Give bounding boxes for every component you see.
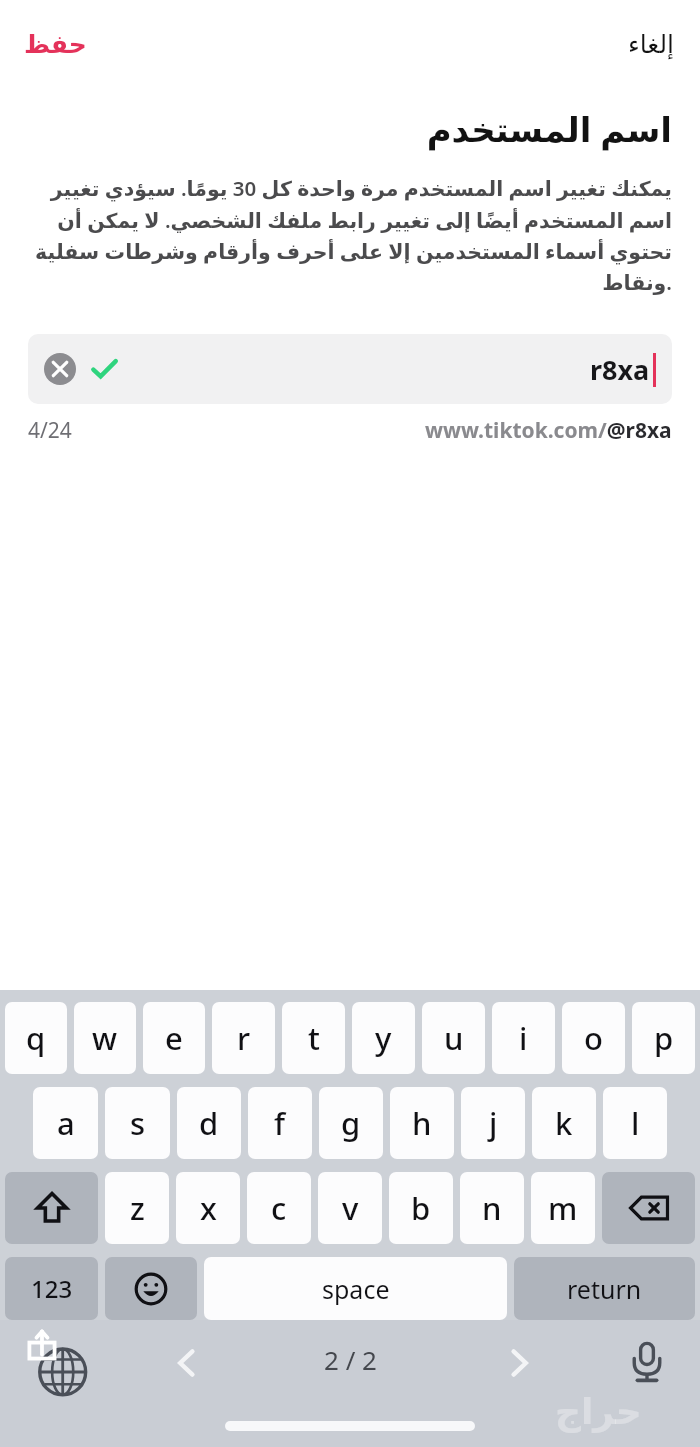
staticText: z [130,1187,145,1229]
staticText: اسم المستخدم [28,106,672,152]
staticText: w [92,1017,118,1059]
staticText: o [584,1017,603,1059]
button[interactable]: d [177,1087,241,1159]
staticText: يمكنك تغيير اسم المستخدم مرة واحدة كل 30… [28,174,672,296]
button[interactable]: l [603,1087,667,1159]
button[interactable]: حفظ [10,22,101,67]
staticText: r [237,1017,251,1059]
button[interactable]: b [389,1172,453,1244]
staticText: f [274,1102,286,1144]
button[interactable]: 123 [5,1257,98,1320]
button[interactable]: n [460,1172,524,1244]
button[interactable]: Next [494,1338,544,1388]
staticText: 2 / 2 [324,1342,377,1377]
button[interactable]: Clear text [28,334,672,404]
staticText: حفظ [24,30,87,59]
button[interactable]: space [204,1257,507,1320]
button[interactable]: a [33,1087,98,1159]
button[interactable]: z [105,1172,169,1244]
staticText: b [411,1187,431,1229]
button[interactable]: k [532,1087,596,1159]
staticText: y [375,1017,392,1059]
other: Username available [90,355,118,383]
staticText: n [482,1187,502,1229]
button[interactable]: v [318,1172,382,1244]
staticText: www.tiktok.com/@r8xa [425,416,672,445]
staticText: t [308,1017,320,1059]
button[interactable]: c [247,1172,311,1244]
staticText: s [130,1102,146,1144]
button[interactable]: w [74,1002,136,1074]
button[interactable]: j [461,1087,525,1159]
staticText: g [341,1102,361,1144]
button[interactable]: x [176,1172,240,1244]
staticText: p [654,1017,674,1059]
button[interactable]: إلغاء [614,22,688,67]
staticText: q [26,1017,46,1059]
button[interactable]: s [105,1087,170,1159]
staticText: v [342,1187,359,1229]
button[interactable]: return [514,1257,695,1320]
staticText: u [444,1017,464,1059]
staticText: k [555,1102,573,1144]
button[interactable]: g [319,1087,383,1159]
staticText: 123 [31,1272,73,1305]
button[interactable]: h [390,1087,454,1159]
staticText: h [412,1102,432,1144]
staticText: i [519,1017,528,1059]
button[interactable]: y [352,1002,415,1074]
button[interactable]: Previous [162,1338,212,1388]
button[interactable]: Emoji [105,1257,197,1320]
button[interactable]: r [212,1002,275,1074]
staticText: a [57,1102,75,1144]
staticText: e [165,1017,183,1059]
staticText: space [322,1272,390,1306]
staticText: j [489,1102,498,1144]
staticText: m [548,1187,578,1229]
button[interactable]: q [5,1002,67,1074]
button[interactable]: Switch keyboard language [22,1326,96,1400]
staticText: 4/24 [28,416,72,445]
button[interactable]: e [143,1002,205,1074]
button[interactable]: Backspace [602,1172,695,1244]
button[interactable]: u [422,1002,485,1074]
staticText: r8xa [590,351,650,388]
staticText: l [631,1102,640,1144]
button[interactable]: o [562,1002,625,1074]
button[interactable]: f [248,1087,312,1159]
button[interactable]: p [632,1002,695,1074]
staticText: c [271,1187,287,1229]
button[interactable]: Clear text [44,353,76,385]
button[interactable]: t [282,1002,345,1074]
staticText: x [200,1187,217,1229]
staticText: return [567,1272,642,1306]
staticText: d [199,1102,219,1144]
button[interactable]: i [492,1002,555,1074]
button[interactable]: m [531,1172,595,1244]
staticText: حراج [555,1391,642,1433]
button[interactable]: Dictation [618,1332,676,1390]
button[interactable]: Shift [5,1172,98,1244]
staticText: إلغاء [628,30,674,59]
